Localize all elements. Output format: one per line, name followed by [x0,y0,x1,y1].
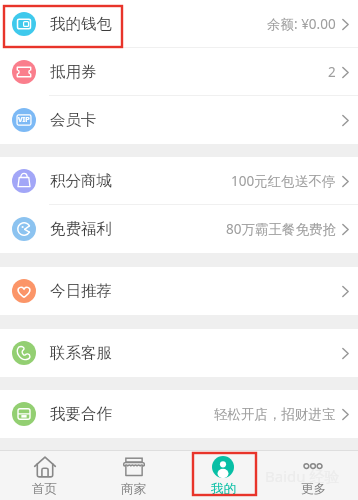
staticText: 免费福利 [50,219,112,239]
staticText: 抵用券 [50,62,97,82]
button[interactable]: 今日推荐 [0,267,358,315]
staticText: 我的钱包 [50,14,112,34]
staticText: 我要合作 [50,404,112,424]
button[interactable]: 积分商城 [0,157,358,205]
staticText: 会员卡 [50,110,97,130]
staticText: 积分商城 [50,171,112,191]
button[interactable]: VIP [0,96,358,144]
button[interactable]: 我的钱包 [0,0,358,48]
staticText: 轻松开店，招财进宝 [214,406,336,423]
staticText: VIP [18,115,30,125]
staticText: 联系客服 [50,343,112,363]
button[interactable]: 免费福利 [0,205,358,253]
button[interactable]: 商家 [89,451,178,500]
button[interactable]: 更多 [268,451,358,500]
staticText: 100元红包送不停 [231,172,336,190]
button[interactable]: 我的 [178,451,268,500]
staticText: 80万霸王餐免费抢 [226,220,336,238]
staticText: 我的 [211,481,236,497]
button[interactable]: 首页 [0,451,89,500]
staticText: 2 [328,63,336,81]
button[interactable]: 我要合作 [0,390,358,438]
staticText: 商家 [121,481,146,497]
staticText: 余额: ¥0.00 [267,15,336,33]
staticText: Baidu 经验 [265,466,340,486]
button[interactable]: 抵用券 [0,48,358,96]
button[interactable]: 联系客服 [0,329,358,377]
staticText: 首页 [32,481,57,497]
staticText: 今日推荐 [50,281,112,301]
staticText: 更多 [301,481,326,497]
